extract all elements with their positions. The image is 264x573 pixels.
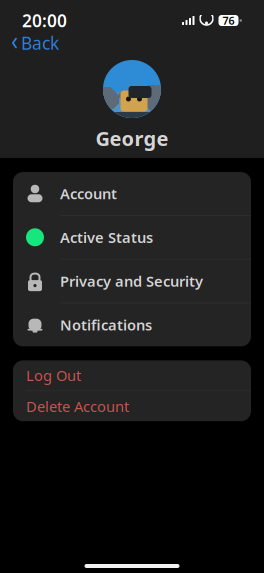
staticText: Privacy and Security xyxy=(60,271,203,291)
staticText: 76 xyxy=(222,13,234,28)
button[interactable]: Active Status xyxy=(13,216,251,260)
staticText: 20:00 xyxy=(22,9,67,32)
staticText: Active Status xyxy=(60,228,153,247)
button[interactable]: Notifications xyxy=(13,303,251,346)
button[interactable]: Delete Account xyxy=(13,391,251,421)
button[interactable]: Privacy and Security xyxy=(13,260,251,303)
button[interactable]: Log Out xyxy=(13,360,251,390)
button[interactable]: Account xyxy=(13,172,251,216)
staticText: Notifications xyxy=(60,315,152,335)
staticText: Log Out xyxy=(26,366,81,385)
button[interactable]: Back xyxy=(2,26,68,59)
staticText: Back xyxy=(21,31,59,54)
staticText: George xyxy=(95,125,168,152)
staticText: Delete Account xyxy=(26,396,129,416)
staticText: Account xyxy=(60,184,117,203)
